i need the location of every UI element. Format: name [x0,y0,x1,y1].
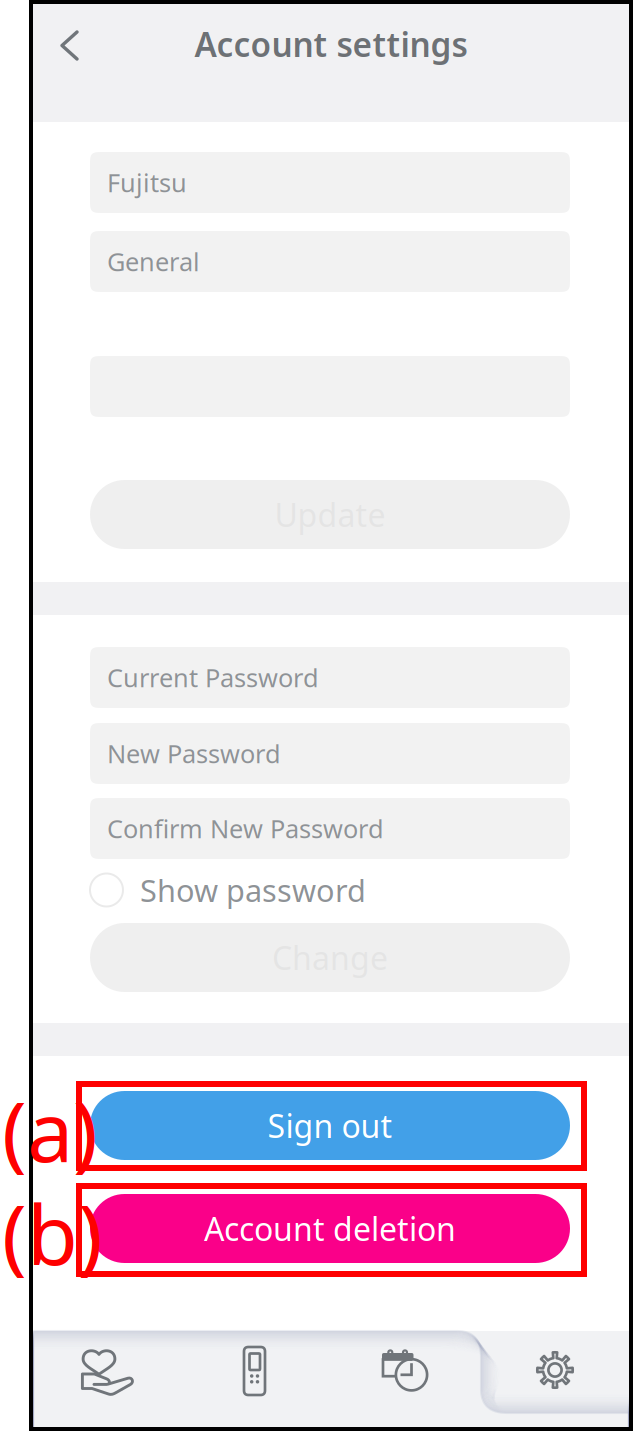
staticText: Show password [140,870,366,910]
staticText: New Password [107,737,281,770]
staticText: Change [272,936,388,979]
button[interactable]: Care [81,1349,135,1395]
button[interactable]: Remote [244,1347,265,1395]
button[interactable]: Settings [536,1351,574,1389]
button[interactable]: Update [90,480,570,549]
staticText: Sign out [267,1104,392,1147]
staticText: (a) [2,1075,98,1185]
staticText: Account settings [194,22,467,66]
button[interactable]: Change [90,923,570,992]
button[interactable]: Account deletion [90,1194,570,1263]
button[interactable]: Show password [90,872,390,908]
button[interactable]: Schedule [381,1349,429,1393]
staticText: Current Password [107,661,319,694]
button[interactable]: Back [62,32,77,59]
staticText: General [107,245,200,278]
staticText: Update [274,493,385,536]
staticText: Account deletion [204,1207,456,1250]
button[interactable]: Sign out [90,1091,570,1160]
staticText: (b) [2,1178,103,1288]
staticText: Fujitsu [107,166,187,199]
staticText: Confirm New Password [107,812,384,845]
